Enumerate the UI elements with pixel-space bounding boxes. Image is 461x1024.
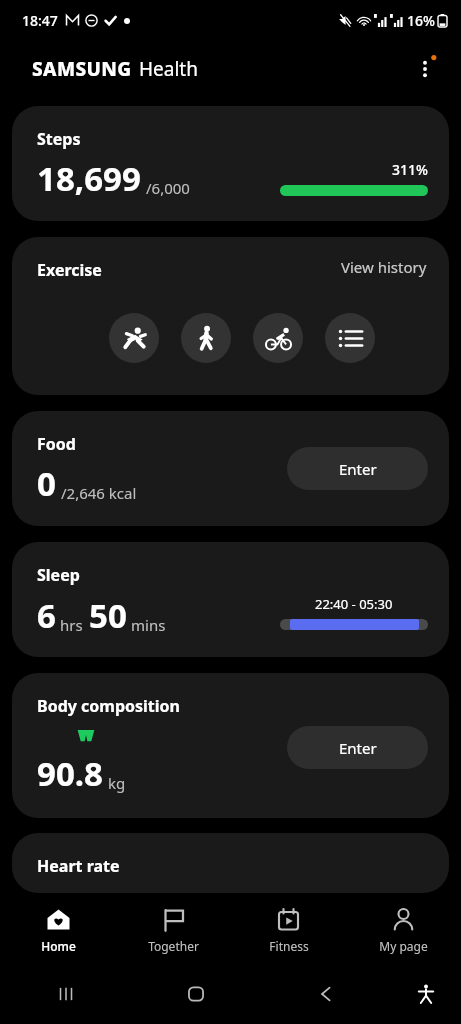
staticText: 6 [37, 593, 56, 638]
button[interactable]: Running [109, 313, 159, 363]
button[interactable]: Enter [287, 447, 428, 490]
button[interactable]: Sleep [12, 542, 449, 657]
staticText: My page [379, 938, 428, 954]
staticText: /6,000 [146, 178, 190, 198]
staticText: Food [37, 433, 76, 455]
button[interactable]: Walking [181, 313, 231, 363]
staticText: 16% [407, 11, 435, 30]
staticText: Sleep [37, 564, 80, 586]
staticText: View history [341, 257, 427, 277]
staticText: 22:40 - 05:30 [315, 595, 393, 613]
staticText: Body composition [37, 695, 180, 717]
button[interactable]: Home [0, 897, 116, 964]
button[interactable]: Steps [12, 106, 449, 221]
staticText: Heart rate [37, 855, 120, 877]
staticText: Exercise [37, 259, 102, 281]
staticText: Enter [339, 738, 377, 758]
button[interactable]: Heart rate [12, 833, 449, 893]
button[interactable]: Back [261, 964, 391, 1024]
staticText: 90.8 [37, 751, 103, 796]
button[interactable]: Together [116, 897, 231, 964]
staticText: Health [139, 56, 198, 82]
button[interactable]: Accessibility [391, 964, 461, 1024]
staticText: hrs [60, 615, 83, 635]
staticText: 0 [37, 461, 56, 506]
staticText: Together [148, 938, 199, 954]
staticText: /2,646 kcal [61, 483, 137, 503]
staticText: 18:47 [22, 11, 58, 30]
button[interactable]: Recent apps [0, 964, 131, 1024]
staticText: kg [108, 773, 126, 793]
staticText: Home [41, 938, 76, 954]
button[interactable]: View history [333, 249, 435, 285]
button[interactable]: Fitness [231, 897, 346, 964]
staticText: mins [131, 615, 166, 635]
staticText: 311% [392, 160, 428, 179]
staticText: Fitness [269, 938, 309, 954]
button[interactable]: Body composition [12, 673, 449, 818]
button[interactable]: Enter [287, 726, 428, 769]
button[interactable]: Home [131, 964, 261, 1024]
staticText: 18,699 [37, 156, 141, 201]
staticText: 50 [89, 593, 127, 638]
button[interactable]: My page [346, 897, 461, 964]
button[interactable]: Exercise [12, 237, 449, 395]
staticText: Enter [339, 459, 377, 479]
staticText: SAMSUNG [32, 56, 132, 82]
button[interactable]: More options [403, 47, 447, 91]
button[interactable]: Cycling [253, 313, 303, 363]
staticText: Steps [37, 128, 81, 150]
button[interactable]: Food [12, 411, 449, 526]
button[interactable]: More exercises [325, 313, 375, 363]
